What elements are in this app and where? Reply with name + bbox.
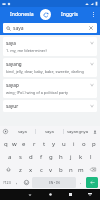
button[interactable]: m [76,163,86,176]
staticText: e [22,140,26,148]
staticText: b [59,166,63,174]
button[interactable]: v [46,163,56,176]
staticText: h [59,153,63,161]
staticText: , [16,179,18,186]
staticText: x [29,166,33,174]
button[interactable]: p [89,137,99,150]
button[interactable]: sayangnya [64,126,91,137]
button[interactable]: b [56,163,66,176]
button[interactable]: c [36,163,46,176]
staticText: Indonesia [10,11,34,18]
button[interactable]: saya [9,126,35,137]
button[interactable]: Voice input [2,128,9,135]
button[interactable]: saya [3,23,97,33]
button[interactable]: saya [3,37,97,56]
staticText: w [12,140,17,148]
button[interactable]: Swap languages [40,9,51,20]
staticText: saya [13,25,24,32]
staticText: c [40,166,43,174]
button[interactable]: More options [89,7,97,21]
staticText: wing; (Pol.) wing of a political party [6,90,69,95]
staticText: a [8,153,12,161]
button[interactable]: t [39,137,49,150]
button[interactable]: l [86,150,96,163]
staticText: s [19,153,22,161]
button[interactable]: r [29,137,39,150]
staticText: v [49,166,53,174]
staticText: kind, jelly, dear, baby, babe, sweetie, … [6,69,84,74]
button[interactable]: a [4,150,15,163]
button[interactable]: n [66,163,76,176]
button[interactable]: i [69,137,79,150]
button[interactable]: z [15,163,26,176]
staticText: saya [6,40,16,46]
button[interactable]: w [10,137,19,150]
staticText: p [92,140,96,148]
button[interactable]: h [56,150,66,163]
button[interactable]: Period [77,177,85,188]
button[interactable]: y [49,137,59,150]
staticText: g [49,153,53,161]
button[interactable]: sayap [3,79,97,98]
staticText: t [43,140,46,148]
button[interactable]: Indonesia [3,7,40,21]
button[interactable]: Home [40,189,60,200]
staticText: sayur [6,103,19,109]
staticText: . [80,179,82,186]
button[interactable]: f [36,150,46,163]
button[interactable]: g [46,150,56,163]
staticText: q [4,140,8,148]
button[interactable]: u [59,137,69,150]
button[interactable]: Space [32,177,76,188]
button[interactable]: s [15,150,26,163]
staticText: j [70,153,72,161]
button[interactable]: o [79,137,89,150]
button[interactable]: x [26,163,36,176]
staticText: u [62,140,66,148]
staticText: y [52,140,56,148]
button[interactable]: Search [86,177,98,188]
button[interactable]: Inggris [51,7,89,21]
button[interactable]: Shift [1,163,15,176]
button[interactable]: Backspace [86,163,99,176]
button[interactable]: Comma [13,177,21,188]
staticText: m [78,166,84,174]
staticText: ?123 [3,180,11,185]
staticText: sayap [6,82,19,88]
button[interactable]: q [1,137,10,150]
staticText: sayangnya [67,129,89,135]
button[interactable]: Recents [60,189,80,200]
staticText: f [40,153,43,161]
staticText: sayang [6,61,22,67]
button[interactable]: d [26,150,36,163]
button[interactable]: Emoji [21,177,31,188]
staticText: saya [18,129,27,135]
button[interactable]: ?123 [1,177,13,188]
button[interactable]: j [66,150,76,163]
staticText: o [82,140,86,148]
staticText: k [79,153,83,161]
button[interactable]: Settings [91,128,98,135]
button[interactable]: Clear [88,25,94,31]
staticText: z [19,166,22,174]
staticText: r [33,140,36,148]
button[interactable]: k [76,150,86,163]
staticText: i [73,140,75,148]
button[interactable]: e [19,137,29,150]
button[interactable]: Hide keyboard [80,189,100,200]
staticText: EN • IN [49,181,60,185]
staticText: Inggris [61,11,79,18]
staticText: 1. my, me (determiner) [6,48,47,53]
staticText: saya [45,129,54,135]
button[interactable]: saya [36,126,63,137]
staticText: n [69,166,73,174]
button[interactable]: sayur [3,100,97,112]
staticText: d [29,153,33,161]
button[interactable]: sayang [3,58,97,77]
staticText: l [90,153,92,161]
button[interactable]: Back [20,189,40,200]
